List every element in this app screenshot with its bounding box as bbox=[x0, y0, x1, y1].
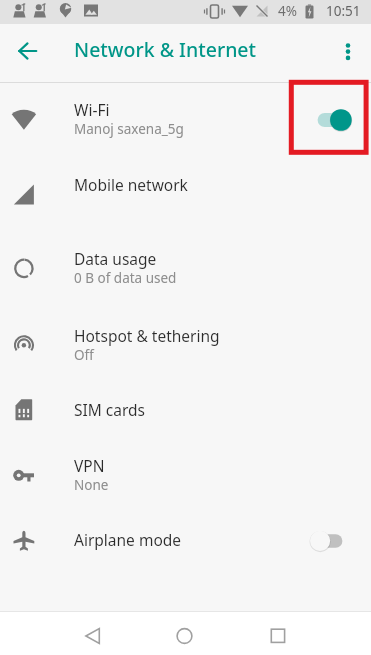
staticText: Hotspot & tethering bbox=[74, 325, 220, 346]
button[interactable]: Mobile network bbox=[0, 131, 371, 206]
button[interactable]: Back bbox=[70, 614, 114, 655]
button[interactable]: VPN bbox=[0, 422, 371, 487]
staticText: Data usage bbox=[74, 248, 157, 269]
staticText: 10:51 bbox=[326, 2, 361, 20]
button[interactable]: Home bbox=[163, 614, 207, 655]
staticText: Manoj saxena_5g bbox=[74, 120, 184, 138]
button[interactable]: Switch off bbox=[308, 525, 354, 557]
button[interactable]: Data usage bbox=[0, 206, 371, 281]
button[interactable]: Navigate up bbox=[10, 32, 50, 72]
button[interactable]: Switch on bbox=[308, 104, 354, 136]
staticText: 4% bbox=[278, 2, 297, 20]
button[interactable]: Airplane mode bbox=[0, 487, 371, 606]
staticText: SIM cards bbox=[74, 399, 146, 420]
button[interactable]: Wi-Fi bbox=[0, 83, 371, 131]
staticText: Off bbox=[74, 346, 94, 364]
staticText: Wi-Fi bbox=[74, 99, 110, 120]
staticText: 0 B of data used bbox=[74, 269, 177, 287]
staticText: Mobile network bbox=[74, 174, 188, 195]
staticText: Airplane mode bbox=[74, 529, 182, 550]
staticText: Network & Internet bbox=[74, 36, 257, 63]
staticText: None bbox=[74, 476, 109, 494]
button[interactable]: Hotspot & tethering bbox=[0, 282, 371, 357]
staticText: VPN bbox=[74, 455, 105, 476]
button[interactable]: SIM cards bbox=[0, 357, 371, 422]
button[interactable]: More options bbox=[328, 32, 368, 72]
button[interactable]: Recent apps bbox=[256, 614, 300, 655]
